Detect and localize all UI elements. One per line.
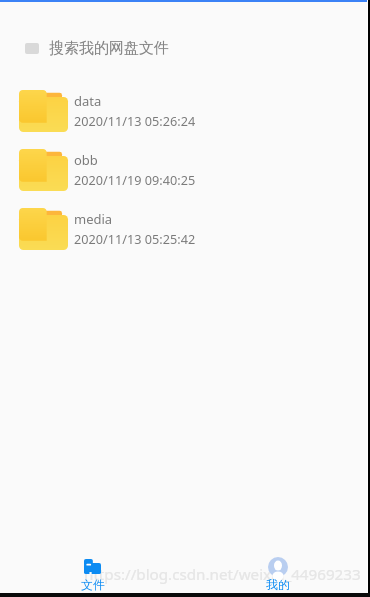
button[interactable]: data [0, 90, 367, 149]
button[interactable]: Files [0, 557, 185, 593]
other: Files [84, 559, 101, 574]
staticText: 搜索我的网盘文件 [49, 39, 169, 58]
staticText: 文件 [81, 577, 105, 592]
button[interactable]: media [0, 208, 367, 267]
staticText: 我的 [266, 577, 290, 592]
staticText: 2020/11/13 05:26:24 [74, 112, 196, 129]
staticText: 2020/11/13 05:25:42 [74, 230, 196, 247]
button[interactable]: obb [0, 149, 367, 208]
staticText: data [74, 92, 102, 110]
staticText: obb [74, 151, 98, 169]
button[interactable]: 搜索我的网盘文件 [0, 33, 367, 63]
button[interactable]: Profile [185, 557, 370, 593]
staticText: 2020/11/19 09:40:25 [74, 171, 196, 188]
staticText: media [74, 210, 113, 228]
staticText: https://blog.csdn.net/weixin_44969233 [84, 564, 361, 585]
other: Profile [268, 557, 288, 572]
